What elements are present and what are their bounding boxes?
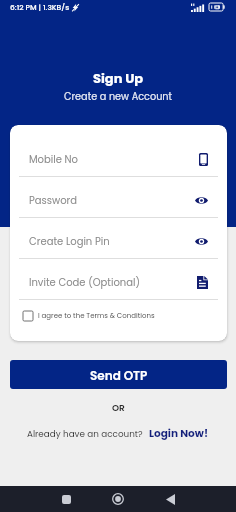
other: Show password [195,196,208,205]
staticText: Create Login Pin [29,234,110,248]
staticText: Mobile No [29,152,78,166]
staticText: Already have an account? [27,428,143,440]
button[interactable]: Home [92,486,144,512]
staticText: Invite Code (Optional) [29,275,141,289]
button[interactable]: Recent apps [40,486,92,512]
other: Show pin [195,237,208,246]
button[interactable]: Mobile No [10,136,227,177]
staticText: Sign Up [93,69,144,87]
other: Invite code [197,276,208,289]
button[interactable]: Invite Code (Optional) [10,259,227,300]
button[interactable]: Password [10,177,227,218]
staticText: OR [112,402,125,415]
staticText: Create a new Account [64,90,173,104]
button[interactable]: Create Login Pin [10,218,227,259]
staticText: Send OTP [90,367,148,384]
button[interactable]: Back [144,486,196,512]
button[interactable]: Login Now! [149,426,209,441]
other: Mobile number [199,153,208,166]
staticText: Login Now! [149,426,209,441]
staticText: I agree to the Terms & Conditions [38,311,155,321]
staticText: 6:12 PM | 1.3KB/s [10,2,70,12]
button[interactable]: I agree to the Terms & Conditions [23,300,214,332]
staticText: Password [29,193,78,207]
button[interactable]: Send OTP [10,360,227,389]
